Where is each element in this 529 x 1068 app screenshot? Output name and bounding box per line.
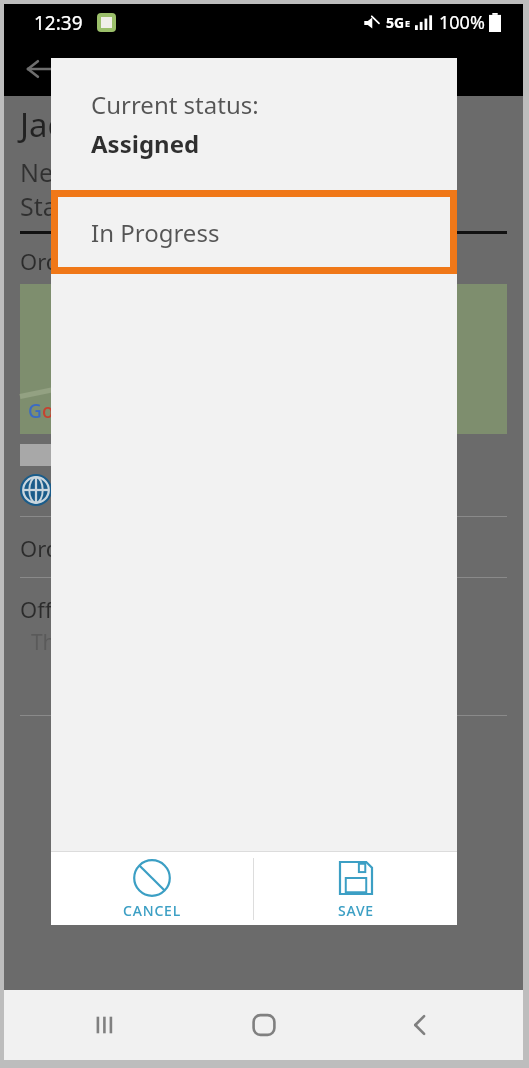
button[interactable]: Cancel: [51, 852, 253, 925]
staticText: CANCEL: [123, 901, 181, 920]
other: Muted: [363, 15, 379, 31]
staticText: Order location: [20, 246, 169, 276]
button[interactable]: Save: [254, 852, 457, 925]
other: Cancel: [132, 858, 172, 898]
staticText: E: [405, 17, 411, 29]
other: Back: [28, 56, 54, 82]
staticText: Order details: [20, 533, 155, 563]
staticText: There are none: [20, 628, 181, 657]
staticText: Assigned: [91, 127, 200, 160]
button[interactable]: Recents: [79, 997, 135, 1053]
button[interactable]: Home: [236, 997, 292, 1053]
other: Save: [336, 858, 376, 898]
staticText: In Progress: [91, 216, 220, 249]
staticText: Status: [20, 189, 94, 223]
button[interactable]: Back: [393, 997, 449, 1053]
staticText: 12:39: [34, 10, 83, 36]
staticText: Office notes: [20, 594, 145, 624]
staticText: o: [42, 398, 54, 424]
staticText: New Job: [20, 155, 117, 189]
staticText: SAVE: [338, 901, 374, 920]
staticText: Jackson: [20, 102, 138, 147]
staticText: G: [28, 398, 42, 424]
staticText: Current status:: [91, 88, 259, 121]
button[interactable]: In Progress: [51, 190, 457, 274]
staticText: 100%: [439, 10, 485, 35]
staticText: 5G: [386, 13, 405, 32]
